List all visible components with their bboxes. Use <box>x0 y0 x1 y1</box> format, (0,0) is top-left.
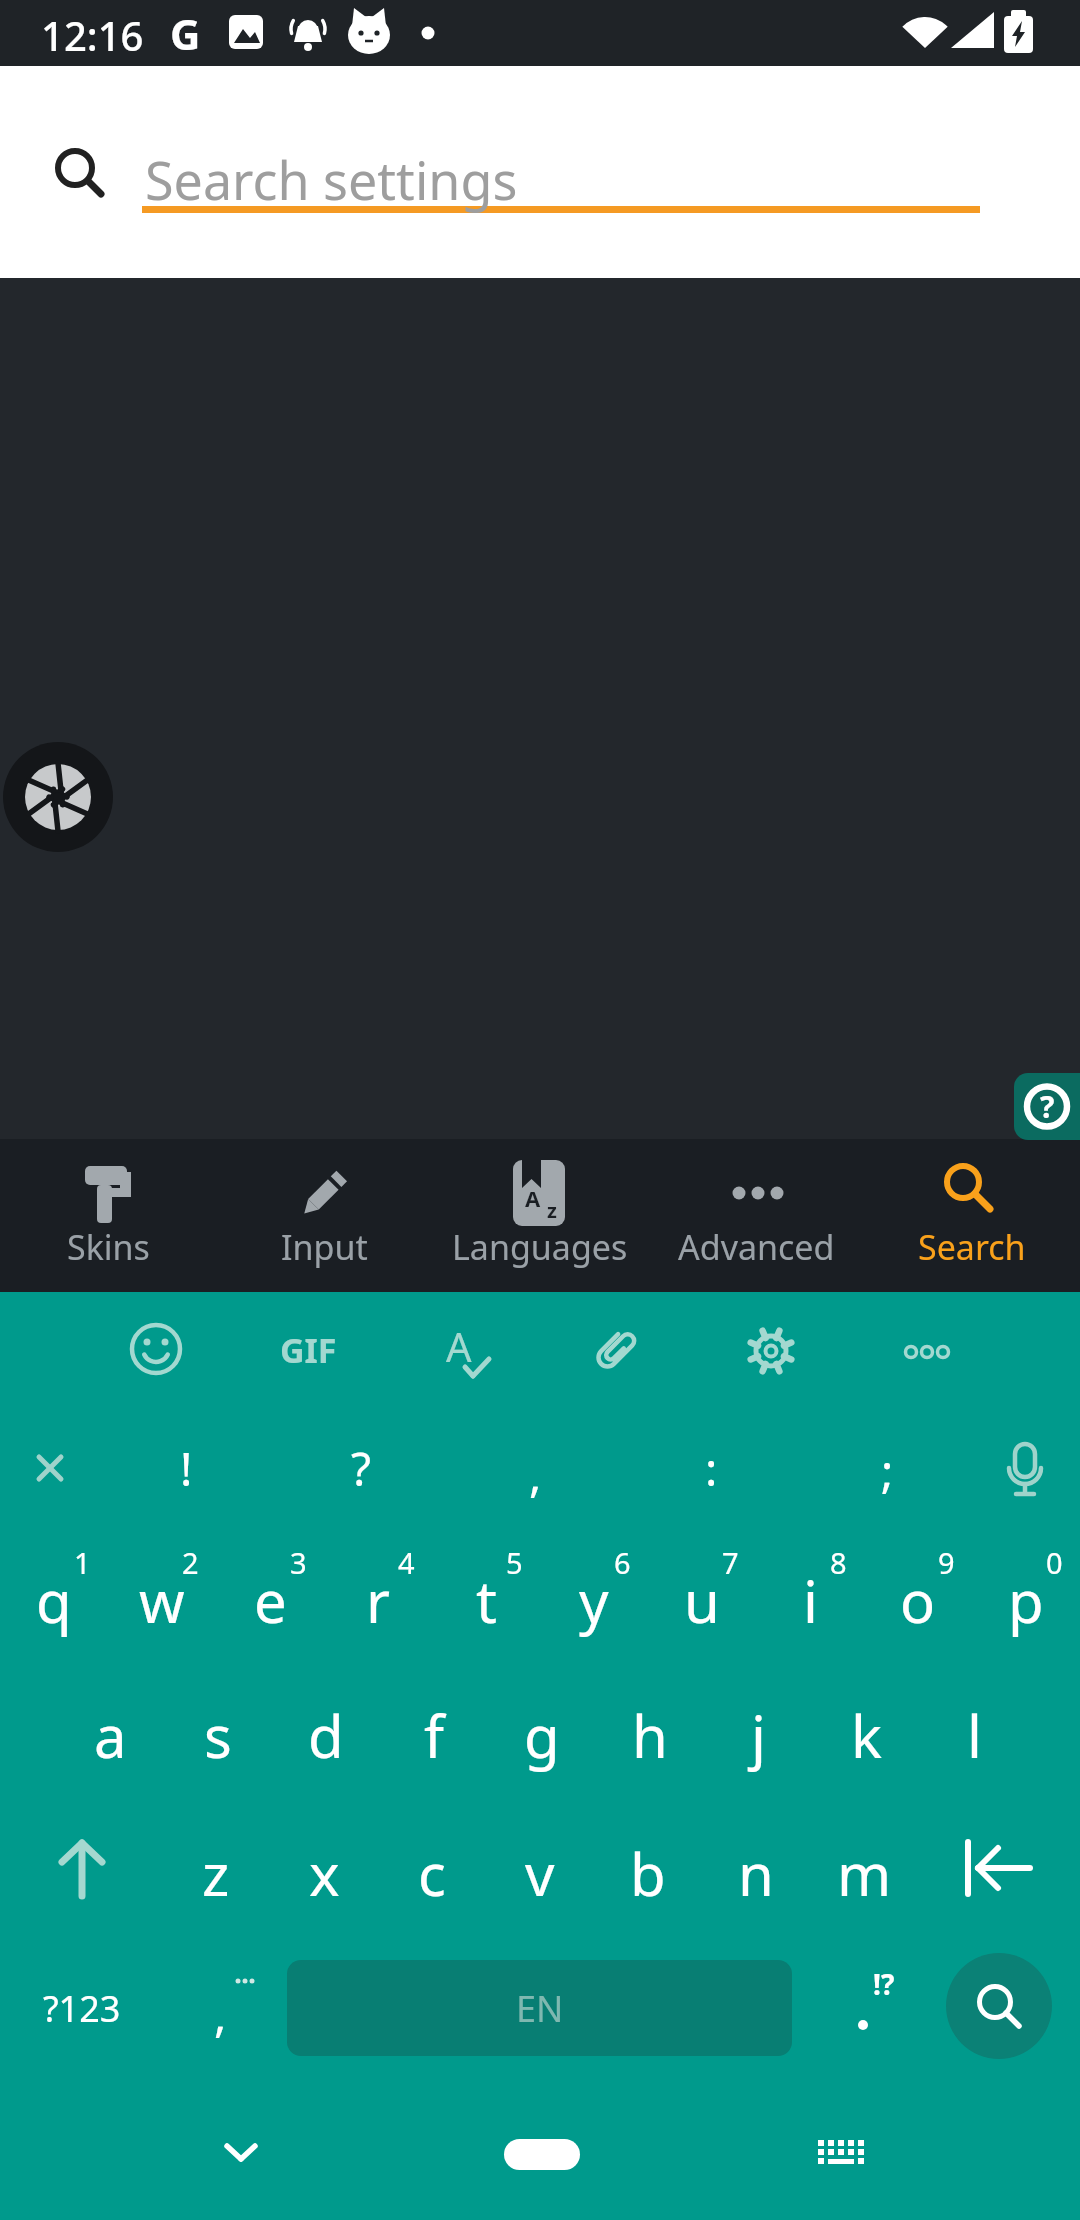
staticText: x <box>309 1834 340 1913</box>
button[interactable]: ; <box>842 1425 932 1515</box>
staticText: 2 <box>182 1543 199 1582</box>
button[interactable]: o <box>864 1535 972 1665</box>
button[interactable]: b <box>594 1808 702 1938</box>
button[interactable] <box>816 1953 916 2063</box>
button[interactable]: c <box>378 1808 486 1938</box>
staticText: A <box>446 1319 472 1373</box>
button[interactable]: s <box>164 1670 272 1800</box>
button[interactable]: Skins <box>0 1139 216 1292</box>
staticText: 3 <box>290 1543 307 1582</box>
button[interactable]: e <box>216 1535 324 1665</box>
staticText: c <box>418 1834 446 1913</box>
staticText: : <box>705 1437 718 1500</box>
button[interactable] <box>945 1808 1055 1928</box>
staticText: ? <box>1040 1086 1055 1127</box>
staticText: 4 <box>398 1543 415 1582</box>
staticText: t <box>476 1561 497 1640</box>
staticText: z <box>547 1197 557 1221</box>
button[interactable]: q <box>0 1535 108 1665</box>
staticText: i <box>803 1561 818 1640</box>
staticText: u <box>684 1561 720 1640</box>
button[interactable]: Input <box>216 1139 432 1292</box>
staticText: , <box>529 1443 542 1506</box>
staticText: 7 <box>722 1543 739 1582</box>
button[interactable]: v <box>486 1808 594 1938</box>
staticText: v <box>525 1834 555 1913</box>
staticText: ; <box>881 1439 894 1502</box>
staticText: o <box>900 1561 936 1640</box>
staticText: , <box>214 1983 227 2046</box>
staticText: r <box>366 1561 390 1640</box>
staticText: n <box>738 1834 774 1913</box>
staticText: d <box>308 1696 344 1775</box>
button[interactable]: z <box>162 1808 270 1938</box>
staticText: e <box>254 1561 287 1640</box>
button[interactable]: Advanced <box>648 1139 864 1292</box>
button[interactable]: ?123 <box>27 1953 137 2063</box>
button[interactable]: ! <box>141 1423 231 1513</box>
button[interactable]: f <box>380 1670 488 1800</box>
button[interactable]: a <box>56 1670 164 1800</box>
staticText: j <box>751 1696 766 1775</box>
button[interactable]: r <box>324 1535 432 1665</box>
button[interactable]: y <box>540 1535 648 1665</box>
staticText: GIF <box>280 1327 337 1373</box>
staticText: ?123 <box>43 1984 121 2033</box>
button[interactable]: ? <box>316 1423 406 1513</box>
staticText: a <box>94 1696 127 1775</box>
button[interactable]: m <box>810 1808 918 1938</box>
staticText: w <box>139 1561 185 1640</box>
staticText: 0 <box>1046 1543 1063 1582</box>
button[interactable]: p <box>972 1535 1080 1665</box>
button[interactable]: w <box>108 1535 216 1665</box>
button[interactable]: h <box>596 1670 704 1800</box>
button[interactable]: u <box>648 1535 756 1665</box>
staticText: Skins <box>67 1224 150 1270</box>
button[interactable]: i <box>756 1535 864 1665</box>
button[interactable]: n <box>702 1808 810 1938</box>
button[interactable]: j <box>704 1670 812 1800</box>
staticText: z <box>202 1834 230 1913</box>
button[interactable] <box>196 2119 286 2189</box>
staticText: k <box>851 1696 882 1775</box>
button[interactable] <box>946 1953 1052 2059</box>
staticText: 1 <box>74 1543 91 1582</box>
button[interactable] <box>25 1810 135 1930</box>
staticText: l <box>967 1696 982 1775</box>
button[interactable]: Search <box>864 1139 1080 1292</box>
button[interactable] <box>796 2119 886 2189</box>
button[interactable]: : <box>666 1423 756 1513</box>
staticText: !? <box>873 1965 895 2003</box>
staticText: 6 <box>614 1543 631 1582</box>
staticText: g <box>524 1696 560 1775</box>
staticText: m <box>837 1834 892 1913</box>
button[interactable]: , <box>170 1959 270 2069</box>
button[interactable]: k <box>812 1670 920 1800</box>
staticText: EN <box>516 1984 564 2033</box>
staticText: y <box>579 1561 609 1640</box>
button[interactable]: , <box>490 1429 580 1519</box>
staticText: ? <box>351 1437 371 1500</box>
staticText: G <box>170 5 201 61</box>
staticText: ! <box>180 1437 193 1500</box>
button[interactable]: g <box>488 1670 596 1800</box>
button[interactable]: l <box>920 1670 1028 1800</box>
button[interactable] <box>979 1423 1069 1513</box>
button[interactable]: GIF <box>248 1320 368 1380</box>
button[interactable] <box>480 2119 600 2189</box>
staticText: 9 <box>938 1543 955 1582</box>
button[interactable]: ? <box>1014 1073 1080 1140</box>
button[interactable] <box>5 1423 95 1513</box>
staticText: Languages <box>452 1224 628 1270</box>
staticText: 12:16 <box>41 8 144 58</box>
staticText: Search settings <box>145 144 518 215</box>
button[interactable]: x <box>270 1808 378 1938</box>
staticText: p <box>1008 1561 1044 1640</box>
staticText: q <box>36 1561 72 1640</box>
staticText: s <box>204 1696 232 1775</box>
button[interactable]: EN <box>287 1960 792 2056</box>
button[interactable]: t <box>432 1535 540 1665</box>
button[interactable]: Search settings <box>0 66 1080 278</box>
button[interactable]: d <box>272 1670 380 1800</box>
button[interactable]: Languages <box>432 1139 648 1292</box>
